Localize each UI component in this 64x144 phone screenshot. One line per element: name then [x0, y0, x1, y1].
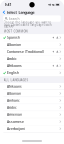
staticText: Cantonese (Traditional): [7, 49, 44, 54]
staticText: MOST COMMON: [3, 29, 27, 33]
staticText: Azerbaijani: [7, 126, 25, 131]
button[interactable]: Amharic: [0, 97, 64, 104]
button[interactable]: Afrikaans: [0, 83, 64, 90]
staticText: Amharic: [7, 98, 20, 103]
button[interactable]: Azerbaijani: [0, 125, 64, 132]
button[interactable]: Albanian: [0, 41, 64, 48]
staticText: Afrikaans: [7, 84, 22, 89]
button[interactable]: Albanian: [0, 90, 64, 97]
staticText: Assamese: [7, 119, 24, 124]
button[interactable]: Cantonese (Traditional): [0, 48, 64, 55]
button[interactable]: English: [0, 69, 64, 76]
button[interactable]: Assamese: [0, 118, 64, 125]
button[interactable]: Arabic: [0, 55, 64, 62]
staticText: Spanish: [7, 35, 20, 40]
staticText: Arabic: [7, 56, 17, 61]
button[interactable]: Back: [0, 9, 6, 15]
staticText: Albanian: [7, 42, 21, 47]
button[interactable]: Arabic: [0, 104, 64, 111]
staticText: Search: [9, 16, 20, 21]
staticText: Arabic: [7, 105, 17, 110]
staticText: ALL LANGUAGES: [3, 78, 28, 82]
staticText: Choose the language you want to translat…: [3, 21, 51, 28]
staticText: into. Downloaded languages work offline.: [3, 23, 51, 30]
button[interactable]: Armenian: [0, 111, 64, 118]
staticText: Armenian: [7, 112, 22, 117]
staticText: Albanian: [7, 91, 21, 96]
staticText: Afrikaans: [7, 63, 22, 68]
staticText: 9:41: [5, 2, 12, 7]
button[interactable]: Afrikaans: [0, 62, 64, 69]
button[interactable]: Search: [3, 15, 61, 22]
staticText: Select Language: [6, 10, 34, 15]
staticText: English: [7, 71, 19, 75]
button[interactable]: Spanish: [0, 34, 64, 41]
